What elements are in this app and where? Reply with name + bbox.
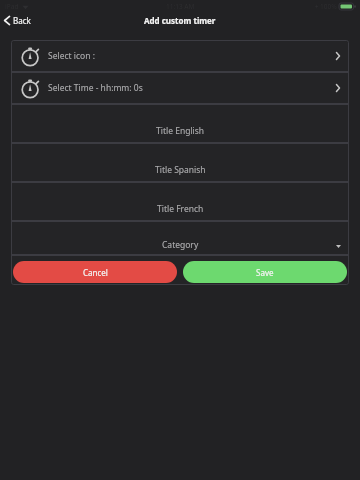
button[interactable]: Title English — [11, 105, 349, 142]
button[interactable]: Select icon : — [11, 40, 349, 71]
button[interactable]: Select Time - hh:mm: 0s — [11, 73, 349, 103]
staticText: Save — [256, 267, 274, 278]
staticText: Title English — [156, 125, 205, 137]
button[interactable]: Back — [0, 13, 37, 28]
staticText: Title French — [157, 203, 204, 215]
button[interactable]: Cancel — [13, 261, 177, 283]
button[interactable]: Category — [11, 222, 349, 254]
staticText: Add custom timer — [144, 15, 216, 26]
staticText: Cancel — [83, 267, 108, 278]
button[interactable]: Title Spanish — [11, 144, 349, 181]
staticText: Select icon : — [48, 50, 95, 62]
staticText: Category — [162, 239, 199, 251]
staticText: Title Spanish — [155, 164, 206, 176]
button[interactable]: Save — [183, 261, 347, 283]
button[interactable]: Title French — [11, 183, 349, 220]
staticText: Back — [13, 15, 31, 26]
staticText: Select Time - hh:mm: 0s — [48, 82, 143, 94]
